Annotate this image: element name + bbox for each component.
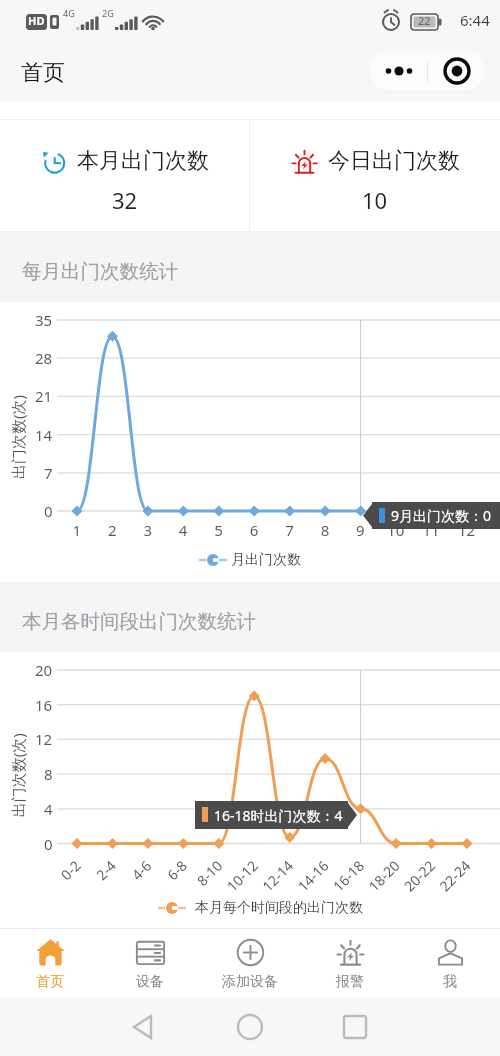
button[interactable]: 添加设备: [200, 929, 300, 998]
staticText: 22: [418, 13, 431, 28]
button[interactable]: 首页: [0, 929, 100, 998]
staticText: 2G: [102, 7, 114, 19]
staticText: 本月各时间段出门次数统计: [22, 609, 256, 634]
staticText: 4G: [63, 7, 75, 19]
staticText: 首页: [21, 59, 65, 87]
staticText: 32: [112, 185, 138, 215]
button[interactable]: More options: [370, 52, 485, 90]
staticText: 本月出门次数: [77, 147, 209, 175]
staticText: 6:44: [460, 10, 490, 30]
button[interactable]: 设备: [100, 929, 200, 998]
button[interactable]: 本月出门次数: [0, 120, 249, 231]
staticText: HD: [28, 13, 45, 28]
staticText: 设备: [136, 973, 164, 991]
staticText: 我: [443, 973, 457, 991]
staticText: 首页: [36, 973, 64, 991]
button[interactable]: 今日出门次数: [250, 120, 500, 231]
button[interactable]: 报警: [300, 929, 400, 998]
staticText: 报警: [336, 973, 364, 991]
staticText: 今日出门次数: [328, 147, 460, 175]
staticText: 10: [362, 185, 388, 215]
other: Close mini program: [428, 52, 485, 90]
staticText: 每月出门次数统计: [22, 259, 178, 284]
staticText: 添加设备: [222, 973, 278, 991]
button[interactable]: 我: [400, 929, 500, 998]
other: More options: [370, 52, 427, 90]
